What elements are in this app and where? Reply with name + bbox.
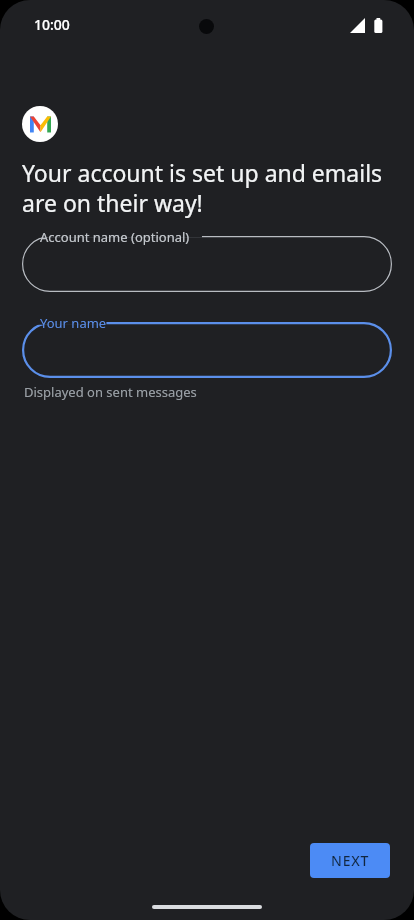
button[interactable]: Account name (optional): [22, 236, 392, 292]
staticText: 10:00: [34, 15, 70, 34]
staticText: Displayed on sent messages: [24, 383, 197, 401]
button[interactable]: Your name: [22, 322, 392, 378]
other: Gmail: [30, 114, 51, 135]
button[interactable]: NEXT: [310, 843, 390, 878]
staticText: Your account is set up and emails are on…: [22, 157, 394, 219]
staticText: NEXT: [331, 851, 370, 870]
staticText: Your name: [40, 314, 107, 332]
staticText: Account name (optional): [40, 228, 190, 246]
